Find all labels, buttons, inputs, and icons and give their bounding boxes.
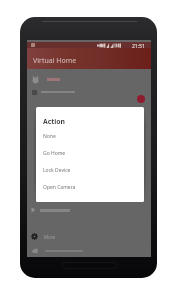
button[interactable]: Lock Device [36, 162, 144, 179]
button[interactable] [27, 245, 151, 257]
button[interactable]: Open Camera [36, 179, 144, 196]
staticText: Action [43, 117, 65, 126]
button[interactable] [27, 71, 151, 87]
button[interactable]: None [36, 128, 144, 145]
button[interactable]: Add shortcut [137, 95, 145, 103]
staticText: None [43, 133, 56, 140]
button[interactable] [27, 204, 151, 216]
staticText: 21:51 [132, 43, 145, 50]
staticText: Virtual Home [33, 56, 77, 66]
staticText: Go Home [43, 150, 66, 157]
staticText: Open Camera [43, 184, 76, 191]
button[interactable]: Go Home [36, 145, 144, 162]
staticText: Lock Device [43, 167, 71, 174]
button[interactable]: More [27, 230, 151, 244]
staticText: More [44, 234, 56, 240]
button[interactable] [27, 86, 151, 100]
